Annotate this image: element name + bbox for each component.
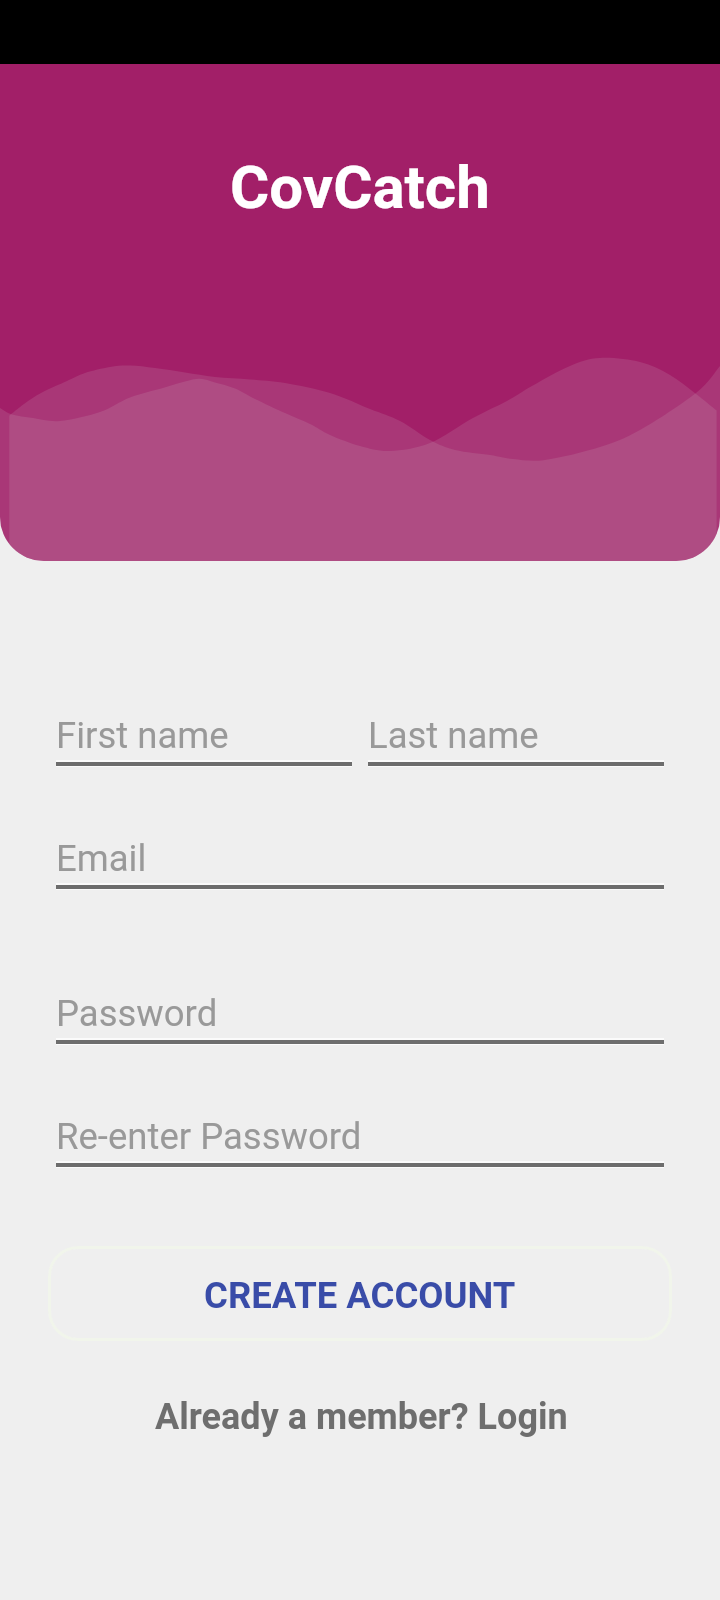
staticText: CREATE ACCOUNT [204,1274,516,1317]
button[interactable]: Re-enter Password [53,1115,664,1179]
staticText: Password [56,992,218,1035]
staticText: Already a member? Login [155,1396,568,1438]
staticText: CovCatch [230,152,490,222]
button[interactable]: Password [53,992,664,1056]
button[interactable]: Already a member? Login [155,1396,569,1442]
button[interactable]: First name [53,714,352,778]
button[interactable]: Last name [365,714,664,778]
staticText: Re-enter Password [56,1115,362,1158]
button[interactable]: Email [53,837,664,901]
staticText: Email [56,837,147,880]
staticText: First name [56,714,229,757]
staticText: Last name [368,714,539,757]
button[interactable]: CREATE ACCOUNT [48,1246,672,1341]
